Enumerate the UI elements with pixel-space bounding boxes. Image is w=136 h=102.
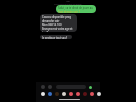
button[interactable]: Camera [41, 85, 45, 89]
staticText: foot demain soir ? [58, 10, 80, 13]
staticText: la ville ou vous recevez [42, 31, 70, 32]
button[interactable]: App [90, 92, 94, 96]
button[interactable]: Send [89, 86, 92, 89]
staticText: Je pratique tout sauf [42, 36, 67, 39]
button[interactable]: Gallery [48, 85, 52, 89]
button[interactable]: App [55, 92, 59, 96]
button[interactable]: App [48, 92, 52, 96]
button[interactable]: App [97, 92, 101, 96]
button[interactable]: App [83, 92, 87, 96]
button[interactable]: Salut, ca te dirait de jouer au [56, 5, 96, 13]
staticText: Mon 068 14 100 [42, 23, 62, 27]
button[interactable]: App [76, 92, 80, 96]
button[interactable]: App [62, 92, 66, 96]
staticText: Hier [66, 0, 71, 3]
button[interactable]: App [69, 92, 73, 96]
staticText: dimanche soir [42, 19, 60, 23]
button[interactable] [56, 85, 86, 89]
staticText: Coucou disponible prog [42, 15, 72, 19]
staticText: Vous avez manque un appel [54, 3, 82, 6]
button[interactable]: Coucou disponible prog [40, 14, 77, 32]
button[interactable]: Je pratique tout sauf [40, 35, 72, 39]
staticText: Envoyez moi votre age et [42, 27, 73, 31]
staticText: Salut, ca te dirait de jouer au [58, 6, 93, 10]
button[interactable]: App [41, 92, 45, 96]
